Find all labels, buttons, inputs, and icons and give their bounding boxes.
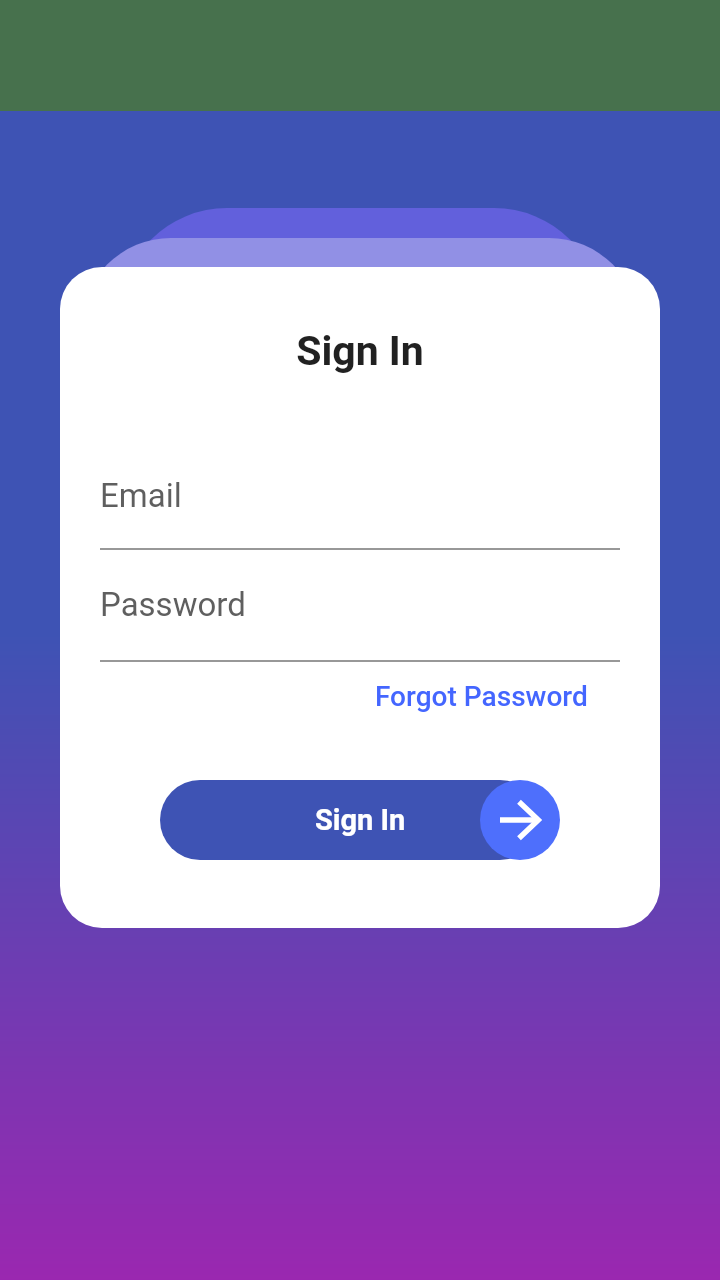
- button[interactable]: Sign In: [160, 780, 560, 860]
- button[interactable]: Sign In, continue: [480, 780, 560, 860]
- staticText: Forgot Password: [375, 680, 588, 713]
- button[interactable]: Email: [100, 467, 620, 550]
- staticText: Password: [100, 585, 246, 624]
- button[interactable]: Password: [100, 576, 620, 662]
- staticText: Email: [100, 476, 182, 515]
- button[interactable]: Forgot Password: [369, 672, 594, 721]
- staticText: Sign In: [315, 803, 406, 837]
- staticText: Sign In: [60, 327, 660, 375]
